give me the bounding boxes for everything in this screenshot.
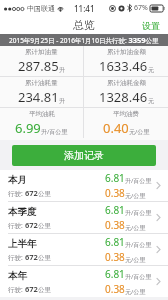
- other: 查看详情: [152, 170, 164, 201]
- staticText: 总览: [73, 18, 95, 32]
- staticText: 本年: [8, 270, 27, 282]
- button[interactable]: 本年: [0, 266, 168, 297]
- other: 查看详情: [152, 234, 164, 265]
- button[interactable]: 设置: [134, 17, 168, 34]
- staticText: 0.38: [105, 186, 125, 200]
- staticText: 公里: [38, 254, 51, 262]
- staticText: 添加记录: [64, 149, 104, 162]
- staticText: 元/公里: [125, 192, 146, 200]
- other: 查看详情: [152, 266, 164, 297]
- staticText: 设置: [142, 20, 160, 31]
- staticText: 累计加油金额: [107, 48, 146, 56]
- button[interactable]: 本季度: [0, 202, 168, 233]
- staticText: 67%: [134, 3, 148, 13]
- staticText: 累计油耗金额: [107, 79, 146, 87]
- staticText: 6.81: [105, 171, 125, 185]
- staticText: 公里: [38, 222, 51, 230]
- staticText: 升/百公里: [125, 177, 152, 185]
- staticText: 0.38: [105, 250, 125, 264]
- staticText: 6.99: [15, 119, 41, 137]
- button[interactable]: 上半年: [0, 234, 168, 265]
- staticText: 元/公里: [125, 288, 146, 296]
- staticText: 升/百公里: [125, 209, 152, 217]
- staticText: 元: [148, 66, 154, 74]
- other: 查看详情: [152, 202, 164, 233]
- staticText: 升/百公里: [125, 273, 152, 281]
- staticText: 2015年9月25日 - 2016年1月10日共行驶: 3359公里: [9, 35, 159, 45]
- staticText: 升/百公里: [41, 128, 68, 136]
- staticText: 672: [25, 220, 38, 230]
- staticText: 672: [25, 252, 38, 262]
- staticText: 公里: [38, 190, 51, 198]
- staticText: 0.40: [103, 119, 129, 137]
- staticText: 升: [59, 66, 65, 74]
- staticText: 0.38: [105, 282, 125, 296]
- staticText: 平均油耗: [29, 110, 55, 118]
- staticText: 1328.46: [99, 88, 148, 106]
- staticText: 行驶:: [8, 285, 25, 294]
- staticText: 行驶:: [8, 221, 25, 230]
- staticText: 672: [25, 284, 38, 294]
- button[interactable]: 添加记录: [12, 145, 156, 166]
- staticText: 本季度: [8, 206, 37, 218]
- staticText: 元/公里: [125, 256, 146, 264]
- staticText: 6.81: [105, 267, 125, 281]
- staticText: 287.85: [18, 57, 59, 75]
- staticText: 6.81: [105, 203, 125, 217]
- staticText: 行驶:: [8, 189, 25, 198]
- staticText: 升: [59, 97, 65, 105]
- staticText: 11:41: [74, 3, 95, 14]
- staticText: 元: [148, 97, 154, 105]
- staticText: 行驶:: [8, 253, 25, 262]
- staticText: 累计油耗量: [25, 79, 58, 87]
- staticText: 672: [25, 188, 38, 198]
- staticText: 0.38: [105, 218, 125, 232]
- staticText: 上半年: [8, 238, 37, 250]
- staticText: 本月: [8, 174, 27, 186]
- staticText: 公里: [38, 286, 51, 294]
- staticText: 1633.46: [99, 57, 148, 75]
- staticText: 元/公里: [125, 224, 146, 232]
- staticText: 中国联通: [27, 4, 55, 13]
- staticText: 升/百公里: [125, 241, 152, 249]
- staticText: 累计加油量: [25, 48, 58, 56]
- staticText: 元/公里: [129, 128, 150, 136]
- staticText: 6.81: [105, 235, 125, 249]
- staticText: 234.81: [18, 88, 59, 106]
- staticText: 平均油费: [113, 110, 139, 118]
- button[interactable]: 本月: [0, 170, 168, 201]
